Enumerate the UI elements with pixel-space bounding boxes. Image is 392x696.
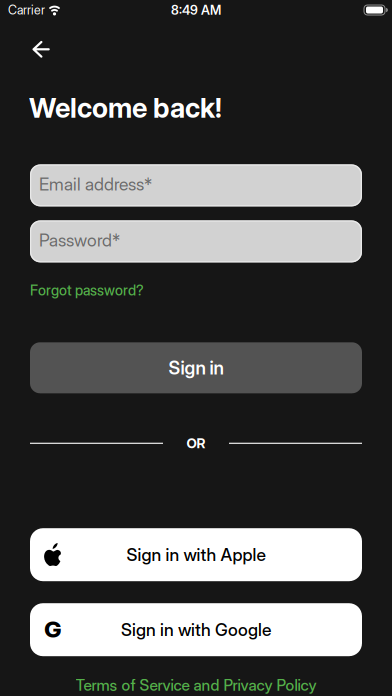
button[interactable]: Sign in (30, 342, 362, 393)
button[interactable]: Sign in with Apple (30, 528, 362, 581)
staticText: Carrier (8, 2, 45, 17)
staticText: G (45, 617, 61, 643)
button[interactable]: Forgot password? (30, 282, 144, 299)
staticText: Sign in with Apple (126, 544, 265, 565)
staticText: Sign in (168, 357, 223, 379)
staticText: Terms of Service and Privacy Policy (75, 676, 316, 694)
button[interactable]: Terms of Service and Privacy Policy (75, 676, 316, 694)
staticText: Welcome back! (29, 91, 222, 124)
staticText: Password* (39, 230, 120, 251)
button[interactable]: G (30, 603, 362, 656)
button[interactable]: Back (25, 33, 57, 65)
staticText: Forgot password? (30, 282, 144, 299)
staticText: 8:49 AM (171, 2, 221, 18)
staticText: Email address* (39, 174, 152, 195)
staticText: Sign in with Google (121, 619, 271, 640)
staticText: OR (186, 435, 205, 452)
